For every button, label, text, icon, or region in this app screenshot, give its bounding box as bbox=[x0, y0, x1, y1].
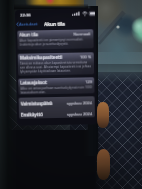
button[interactable]: Latausjaksot bbox=[20, 78, 92, 86]
button[interactable]: Valmistuspäivä bbox=[21, 99, 93, 107]
staticText: Akun tila bbox=[19, 31, 38, 38]
staticText: 129 bbox=[85, 79, 92, 84]
staticText: Latausjaksot bbox=[20, 79, 47, 86]
staticText: Normaali bbox=[73, 31, 91, 37]
staticText: Ensikäyttö bbox=[21, 111, 43, 118]
staticText: 22:36 bbox=[20, 12, 31, 19]
staticText: Asetukset bbox=[19, 21, 38, 27]
staticText: syyskuu 2024 bbox=[67, 100, 93, 106]
button[interactable]: Asetukset bbox=[16, 20, 38, 28]
staticText: Akun kapasiteetti on pienentynyt normaal… bbox=[19, 37, 91, 47]
staticText: Valmistuspäivä bbox=[21, 100, 53, 107]
staticText: 100 % bbox=[80, 54, 92, 59]
staticText: Akun tila bbox=[44, 21, 65, 27]
staticText: Tämä on mittaus akun kapasiteetista verr… bbox=[20, 60, 92, 74]
button[interactable]: Ensikäyttö bbox=[21, 110, 93, 118]
button[interactable]: Maksimikapasiteetti bbox=[20, 53, 92, 61]
staticText: Akku voi antaa parhaan suorituskykynsä n… bbox=[20, 85, 92, 94]
staticText: Maksimikapasiteetti bbox=[20, 54, 63, 61]
button[interactable]: Akun tila bbox=[19, 30, 91, 38]
staticText: syyskuu 2024 bbox=[67, 111, 93, 117]
